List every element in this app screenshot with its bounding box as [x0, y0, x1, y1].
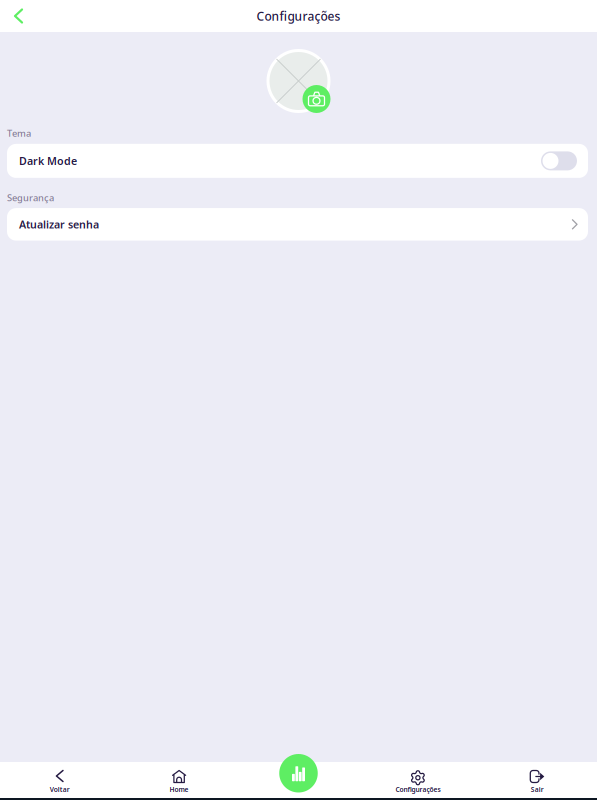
staticText: Sair: [531, 785, 544, 794]
staticText: Tema: [7, 127, 31, 139]
staticText: Dark Mode: [19, 154, 77, 168]
staticText: Voltar: [50, 785, 70, 794]
staticText: Configurações: [395, 785, 440, 794]
staticText: Atualizar senha: [19, 217, 99, 231]
button[interactable]: [239, 762, 358, 798]
button[interactable]: Atualizar senha: [7, 208, 588, 241]
staticText: Configurações: [256, 8, 340, 24]
staticText: Home: [170, 785, 189, 794]
staticText: Segurança: [7, 191, 54, 204]
button[interactable]: Home: [119, 762, 239, 798]
button[interactable]: Alterar foto: [302, 85, 330, 113]
button[interactable]: Configurações: [358, 762, 478, 798]
button[interactable]: Voltar: [0, 762, 119, 798]
button[interactable]: Voltar: [0, 0, 35, 31]
button[interactable]: Estatísticas: [279, 754, 318, 792]
button[interactable]: Sair: [478, 762, 597, 798]
button[interactable]: Dark Mode: [7, 144, 588, 178]
